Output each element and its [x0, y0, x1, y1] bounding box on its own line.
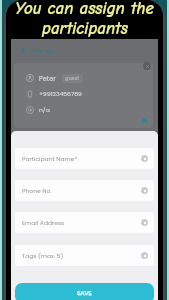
button[interactable]: Collapse — [140, 116, 149, 125]
button[interactable]: Participant Name* — [15, 148, 154, 169]
button[interactable]: Email Address — [15, 212, 154, 233]
staticText: Peter — [39, 74, 56, 83]
staticText: Phone No. — [22, 187, 52, 195]
staticText: You can assign the — [15, 0, 154, 19]
button[interactable]: SAVE — [15, 283, 154, 300]
staticText: participants — [42, 19, 128, 39]
staticText: Tags (max. 5) — [22, 252, 64, 260]
staticText: n/a — [39, 106, 50, 114]
button[interactable]: Remove participant — [143, 62, 151, 70]
staticText: guest — [65, 75, 80, 82]
button[interactable]: Clear Phone No. — [141, 187, 148, 194]
button[interactable]: Show less — [20, 46, 55, 56]
button[interactable]: Tags (max. 5) — [15, 245, 154, 266]
button[interactable]: Clear Tags (max. 5) — [141, 252, 148, 259]
staticText: Participant Name* — [22, 155, 78, 163]
staticText: +99123456789 — [39, 90, 82, 98]
button[interactable]: Clear Participant Name* — [141, 155, 148, 162]
staticText: SAVE — [77, 289, 92, 297]
staticText: Show less — [30, 48, 55, 55]
button[interactable]: Clear Email Address — [141, 219, 148, 226]
staticText: Email Address — [22, 219, 65, 227]
button[interactable]: Phone No. — [15, 180, 154, 201]
